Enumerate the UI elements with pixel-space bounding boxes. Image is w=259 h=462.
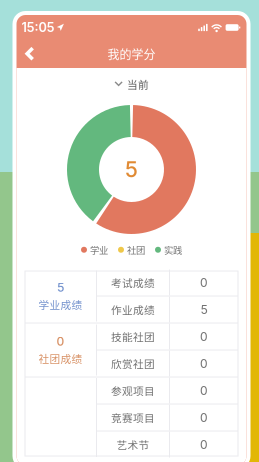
staticText: 0 (200, 383, 208, 398)
staticText: 5 (125, 157, 138, 182)
staticText: 学业 (90, 243, 108, 256)
staticText: 5 (57, 280, 64, 294)
staticText: 实践 (164, 243, 182, 256)
staticText: 15:05 (21, 20, 54, 35)
staticText: 参观项目 (111, 383, 155, 398)
staticText: 5 (200, 302, 207, 317)
staticText: 作业成绩 (111, 302, 155, 317)
staticText: 技能社团 (111, 329, 155, 344)
staticText: 艺术节 (116, 437, 149, 452)
staticText: 竞赛项目 (111, 410, 155, 425)
staticText: 欣赏社团 (111, 356, 155, 371)
staticText: 社团 (127, 243, 145, 256)
button[interactable]: Back (17, 41, 41, 67)
staticText: 当前 (127, 76, 149, 92)
staticText: 0 (56, 334, 64, 348)
staticText: 0 (200, 410, 208, 425)
button[interactable]: 当前 (106, 74, 157, 94)
staticText: 学业成绩 (38, 297, 82, 312)
staticText: 0 (200, 437, 208, 452)
staticText: 我的学分 (107, 45, 155, 63)
staticText: 0 (200, 329, 208, 344)
staticText: 0 (200, 356, 208, 371)
staticText: 考试成绩 (111, 275, 155, 290)
staticText: 社团成绩 (38, 351, 82, 366)
staticText: 0 (200, 275, 208, 290)
